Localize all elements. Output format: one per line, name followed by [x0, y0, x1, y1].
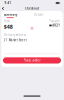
staticText: Summary — [4, 13, 17, 16]
staticText: Delivery address — [4, 33, 26, 37]
staticText: $48 — [4, 23, 13, 30]
button[interactable]: Back — [1, 6, 6, 11]
staticText: Total — [4, 19, 10, 23]
button[interactable]: Summary — [4, 13, 17, 18]
staticText: 9:41 — [4, 1, 11, 5]
staticText: Checkout — [25, 7, 39, 10]
button[interactable]: Details — [34, 13, 43, 18]
button[interactable]: Place order — [3, 57, 61, 63]
staticText: Place order — [23, 59, 40, 62]
staticText: 4821 — [52, 24, 60, 27]
staticText: Details — [34, 13, 43, 16]
staticText: 21 Market Street — [4, 38, 27, 42]
staticText: Pay with — [49, 19, 60, 23]
